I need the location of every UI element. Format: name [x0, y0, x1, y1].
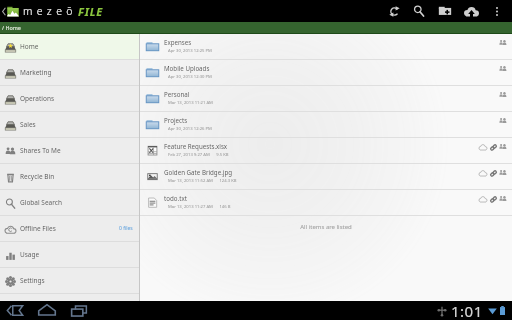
button[interactable]: Share [498, 90, 508, 100]
button[interactable]: Golden Gate Bridge.jpg [140, 164, 512, 189]
button[interactable]: Home [0, 34, 139, 59]
staticText: Mar 13, 2013 11:52 AM 124.3 KB [168, 178, 237, 184]
staticText: Global Search [20, 198, 62, 207]
staticText: Shares To Me [20, 146, 61, 155]
staticText: mezeō [23, 4, 77, 18]
button[interactable]: Global Search [0, 190, 139, 215]
button[interactable]: Back [4, 303, 26, 318]
staticText: Feb 27, 2013 9:27 AM 9.5 KB [168, 152, 229, 158]
staticText: Sales [20, 120, 36, 129]
staticText: Projects [164, 116, 188, 124]
staticText: Feature Requests.xlsx [164, 142, 228, 150]
button[interactable]: todo.txt [140, 190, 512, 215]
button[interactable]: Refresh [389, 0, 400, 22]
staticText: Usage [20, 250, 40, 259]
staticText: Offline Files [20, 224, 56, 233]
button[interactable]: Settings [0, 268, 139, 293]
staticText: Golden Gate Bridge.jpg [164, 168, 233, 176]
button[interactable]: Search [413, 0, 425, 22]
button[interactable]: Copy link [488, 168, 498, 178]
staticText: Recycle Bin [20, 172, 55, 181]
button[interactable]: Share [498, 64, 508, 74]
button[interactable]: Copy link [488, 142, 498, 152]
staticText: Settings [20, 276, 45, 285]
button[interactable]: Recents [68, 303, 90, 318]
button[interactable]: Mobile Uploads [140, 60, 512, 85]
staticText: Apr 30, 2013 12:26 PM [168, 126, 212, 132]
staticText: Expenses [164, 38, 192, 46]
staticText: All items are listed [140, 223, 512, 231]
button[interactable]: Up [0, 0, 103, 22]
button[interactable]: Copy link [488, 194, 498, 204]
button[interactable]: Home [35, 302, 58, 318]
button[interactable]: Shares To Me [0, 138, 139, 163]
staticText: 0 files [119, 225, 133, 232]
button[interactable]: Expenses [140, 34, 512, 59]
button[interactable]: / Home [0, 22, 512, 33]
staticText: Marketing [20, 68, 52, 77]
button[interactable]: Sales [0, 112, 139, 137]
staticText: Apr 30, 2013 12:30 PM [168, 74, 212, 80]
button[interactable]: Make offline [478, 194, 488, 204]
staticText: Mar 13, 2013 11:21 AM [168, 100, 213, 106]
button[interactable]: Marketing [0, 60, 139, 85]
staticText: Apr 30, 2013 12:25 PM [168, 48, 212, 54]
staticText: Mar 13, 2013 11:27 AM 146 B [168, 204, 231, 210]
button[interactable]: New folder [438, 0, 452, 22]
staticText: Personal [164, 90, 190, 98]
staticText: todo.txt [164, 194, 187, 202]
staticText: FILE [78, 4, 103, 19]
button[interactable]: Share [498, 194, 508, 204]
staticText: / Home [2, 24, 21, 31]
button[interactable]: More options [491, 0, 503, 22]
button[interactable]: Share [498, 38, 508, 48]
button[interactable]: Projects [140, 112, 512, 137]
button[interactable]: Recycle Bin [0, 164, 139, 189]
button[interactable]: Share [498, 168, 508, 178]
button[interactable]: Share [498, 116, 508, 126]
staticText: Mobile Uploads [164, 64, 210, 72]
staticText: Operations [20, 94, 55, 103]
button[interactable]: Share [498, 142, 508, 152]
staticText: Home [20, 42, 39, 51]
button[interactable]: Offline Files [0, 216, 139, 241]
button[interactable]: Make offline [478, 142, 488, 152]
button[interactable]: Upload [464, 0, 479, 22]
button[interactable]: Personal [140, 86, 512, 111]
button[interactable]: Make offline [478, 168, 488, 178]
button[interactable]: Feature Requests.xlsx [140, 138, 512, 163]
button[interactable]: Usage [0, 242, 139, 267]
staticText: 1:01 [451, 301, 483, 320]
button[interactable]: Operations [0, 86, 139, 111]
